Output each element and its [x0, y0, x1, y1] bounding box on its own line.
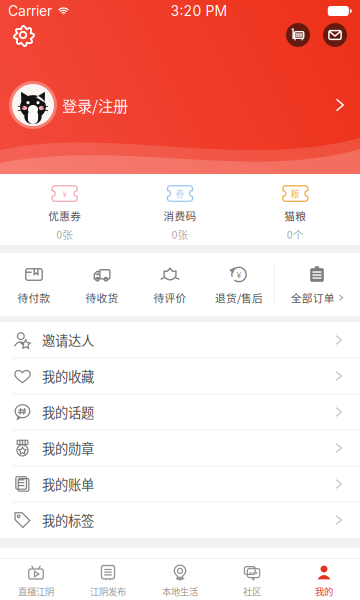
button[interactable]: 券 — [122, 174, 238, 245]
button[interactable]: 直播江阴 — [0, 558, 72, 600]
staticText: 0个 — [287, 226, 304, 242]
button[interactable]: 购物车 — [285, 22, 311, 48]
button[interactable]: 设置 — [3, 22, 43, 48]
button[interactable]: 登录/注册 — [0, 75, 360, 135]
staticText: 消费码 — [163, 208, 196, 223]
staticText: 优惠券 — [48, 208, 81, 223]
button[interactable]: 邀请达人 — [0, 322, 360, 357]
staticText: 0张 — [171, 226, 188, 242]
staticText: 我的账单 — [42, 474, 94, 494]
staticText: 社区 — [243, 584, 261, 598]
button[interactable]: 我的标签 — [0, 502, 360, 537]
staticText: 全部订单 — [291, 290, 335, 305]
staticText: 我的收藏 — [42, 366, 94, 386]
staticText: 我的话题 — [42, 402, 94, 422]
staticText: ¥ — [62, 187, 67, 200]
button[interactable]: 待评价 — [136, 253, 204, 316]
button[interactable]: 本地生活 — [144, 558, 216, 600]
staticText: 粮 — [291, 187, 300, 200]
button[interactable]: 我的话题 — [0, 394, 360, 429]
staticText: Carrier — [8, 2, 52, 19]
button[interactable]: 江阴发布 — [72, 558, 144, 600]
button[interactable]: ¥ — [7, 174, 122, 245]
button[interactable]: 我的收藏 — [0, 358, 360, 393]
button[interactable]: 社区 — [216, 558, 288, 600]
staticText: 券 — [175, 187, 184, 200]
button[interactable]: ¥ — [204, 253, 274, 316]
button[interactable]: 粮 — [238, 174, 353, 245]
staticText: 3:20 PM — [170, 2, 227, 19]
button[interactable]: 待收货 — [68, 253, 136, 316]
button[interactable]: 全部订单 — [274, 253, 360, 316]
staticText: 我的标签 — [42, 510, 94, 530]
staticText: ¥ — [236, 268, 241, 281]
button[interactable]: 待付款 — [0, 253, 68, 316]
staticText: 0张 — [56, 226, 73, 242]
staticText: 直播江阴 — [18, 584, 54, 598]
staticText: 我的勋章 — [42, 438, 94, 458]
staticText: 我的 — [315, 584, 333, 598]
staticText: 邀请达人 — [42, 330, 94, 350]
staticText: 登录/注册 — [62, 94, 128, 116]
button[interactable]: 我的账单 — [0, 466, 360, 501]
staticText: 本地生活 — [162, 584, 198, 598]
staticText: 待收货 — [85, 290, 118, 305]
button[interactable]: 消息 — [322, 22, 348, 48]
staticText: 江阴发布 — [90, 584, 126, 598]
button[interactable]: 我的 — [288, 558, 360, 600]
staticText: 待付款 — [17, 290, 50, 305]
button[interactable]: 我的勋章 — [0, 430, 360, 465]
staticText: 退货/售后 — [215, 290, 263, 305]
staticText: 猫粮 — [284, 208, 306, 223]
staticText: 待评价 — [153, 290, 186, 305]
